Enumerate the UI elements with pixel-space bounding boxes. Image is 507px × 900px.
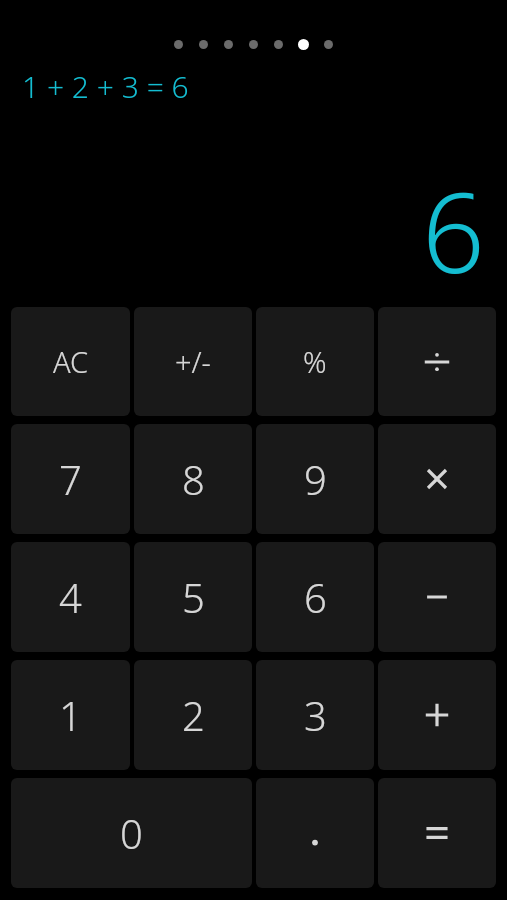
staticText: 7 [59, 452, 82, 506]
button[interactable]: 6 [256, 542, 374, 652]
button[interactable]: Decimal point [256, 778, 374, 888]
staticText: 3 [304, 688, 327, 742]
button[interactable]: Minus [378, 542, 496, 652]
staticText: 6 [422, 155, 485, 305]
button[interactable]: 2 [134, 660, 252, 770]
button[interactable]: 4 [11, 542, 130, 652]
staticText: 2 [182, 688, 205, 742]
button[interactable]: Divide [378, 307, 496, 416]
staticText: 1 [59, 688, 82, 742]
button[interactable]: Equals [378, 778, 496, 888]
button[interactable]: 7 [11, 424, 130, 534]
button[interactable]: All clear [11, 307, 130, 416]
button[interactable]: Multiply [378, 424, 496, 534]
button[interactable]: Percent [256, 307, 374, 416]
button[interactable]: 5 [134, 542, 252, 652]
button[interactable]: Plus [378, 660, 496, 770]
staticText: 6 [304, 570, 327, 624]
staticText: 4 [59, 570, 82, 624]
button[interactable]: 1 [11, 660, 130, 770]
staticText: AC [53, 342, 89, 381]
staticText: 8 [182, 452, 205, 506]
staticText: 5 [182, 570, 205, 624]
staticText: 9 [304, 452, 327, 506]
button[interactable]: 8 [134, 424, 252, 534]
staticText: % [303, 342, 327, 381]
button[interactable]: Plus minus [134, 307, 252, 416]
button[interactable]: 3 [256, 660, 374, 770]
staticText: 0 [120, 806, 143, 860]
staticText: +/- [175, 342, 211, 381]
staticText: 1 + 2 + 3 = 6 [22, 66, 189, 107]
button[interactable]: 0 [11, 778, 252, 888]
button[interactable]: 9 [256, 424, 374, 534]
